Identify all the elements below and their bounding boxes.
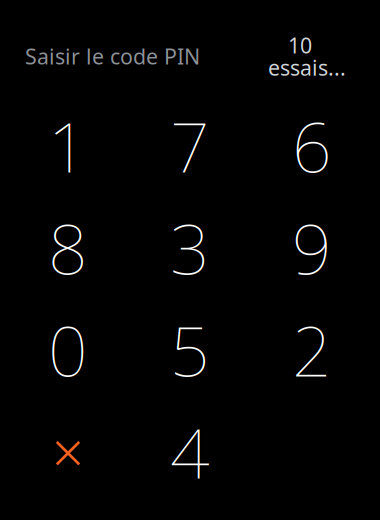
button[interactable]: 3	[129, 197, 251, 299]
button[interactable]: 4	[129, 401, 251, 503]
button[interactable]: 1	[7, 95, 129, 197]
staticText: 4	[170, 406, 210, 498]
staticText: 3	[170, 202, 210, 294]
button[interactable]: 5	[129, 299, 251, 401]
button[interactable]: Delete	[7, 401, 129, 503]
staticText: 7	[170, 100, 210, 192]
staticText: 9	[292, 202, 332, 294]
staticText: 10	[288, 31, 312, 59]
staticText: 6	[292, 100, 332, 192]
staticText: 2	[292, 304, 332, 396]
staticText: 8	[48, 202, 88, 294]
staticText: 1	[48, 100, 88, 192]
staticText: 0	[48, 304, 88, 396]
staticText: Saisir le code PIN	[25, 42, 200, 70]
button[interactable]: 8	[7, 197, 129, 299]
button[interactable]: 0	[7, 299, 129, 401]
button[interactable]: 2	[251, 299, 373, 401]
button[interactable]: 9	[251, 197, 373, 299]
staticText: essais...	[268, 53, 346, 82]
button[interactable]: 6	[251, 95, 373, 197]
staticText: 5	[170, 304, 210, 396]
button[interactable]: 7	[129, 95, 251, 197]
